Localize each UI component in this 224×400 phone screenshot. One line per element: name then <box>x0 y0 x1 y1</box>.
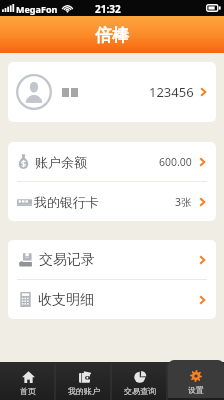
staticText: 我的账户 <box>68 386 100 396</box>
staticText: 首页 <box>20 386 36 396</box>
button[interactable]: 交易记录 <box>8 240 216 279</box>
staticText: 3张 <box>175 195 192 209</box>
button[interactable]: 交易查询 <box>112 362 168 400</box>
staticText: 我的银行卡 <box>34 194 99 210</box>
staticText: 600.00 <box>159 155 192 169</box>
staticText: 123456 <box>149 83 194 101</box>
button[interactable]: 首页 <box>0 362 56 400</box>
button[interactable]: 账户余额 <box>8 142 216 181</box>
button[interactable]: 收支明细 <box>8 280 216 319</box>
button[interactable]: 设置 <box>168 360 224 398</box>
staticText: MegaFon <box>16 3 58 15</box>
staticText: 设置 <box>188 385 204 395</box>
staticText: 交易查询 <box>124 386 156 396</box>
button[interactable]: 我的账户 <box>56 362 112 400</box>
staticText: 21:32 <box>95 2 121 16</box>
staticText: 倍棒 <box>95 25 129 46</box>
staticText: 账户余额 <box>35 154 87 170</box>
staticText: 交易记录 <box>39 251 95 269</box>
button[interactable]: 123456 <box>8 62 216 122</box>
staticText: 收支明细 <box>38 291 94 309</box>
button[interactable]: 我的银行卡 <box>8 182 216 221</box>
